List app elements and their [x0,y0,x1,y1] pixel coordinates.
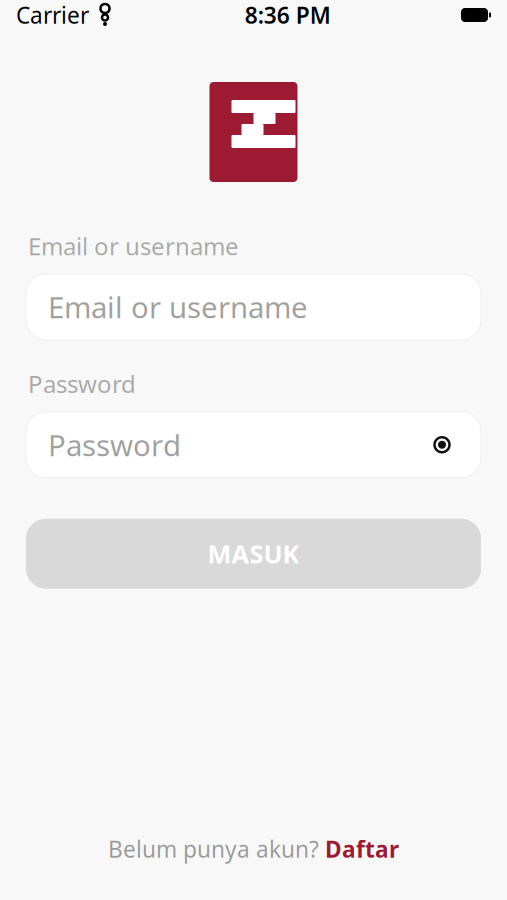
staticText: MASUK [207,537,299,570]
staticText: Daftar [325,834,399,864]
button[interactable]: Show password [425,428,459,462]
button[interactable]: MASUK [26,519,481,589]
staticText: Carrier [16,0,89,30]
staticText: Password [28,368,136,400]
staticText: Email or username [48,287,308,326]
staticText: Email or username [28,230,239,262]
staticText: 8:36 PM [245,0,331,30]
staticText: Belum punya akun? [108,834,319,864]
staticText: Password [48,425,181,464]
button[interactable]: Belum punya akun? [96,828,411,870]
